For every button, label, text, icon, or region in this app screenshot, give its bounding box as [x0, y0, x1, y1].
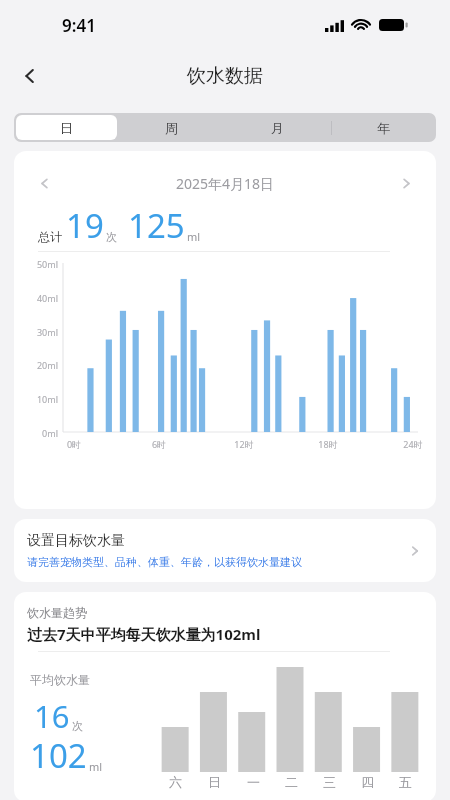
button[interactable]: 月 [224, 113, 330, 142]
staticText: 16 [34, 695, 70, 737]
staticText: 六 [169, 774, 182, 790]
staticText: ml [89, 759, 103, 774]
button[interactable]: Next day [392, 169, 420, 197]
staticText: 40ml [26, 292, 58, 304]
staticText: 19 [66, 203, 104, 248]
staticText: 50ml [26, 258, 58, 270]
staticText: 年 [377, 120, 390, 136]
staticText: 四 [361, 774, 374, 790]
staticText: 0时 [61, 438, 87, 450]
staticText: 一 [247, 774, 260, 790]
staticText: 0ml [26, 427, 58, 439]
button[interactable]: 周 [119, 113, 224, 142]
staticText: 五 [399, 774, 412, 790]
staticText: 9:41 [62, 14, 96, 37]
staticText: 18时 [315, 438, 341, 450]
staticText: 二 [285, 774, 298, 790]
button[interactable]: 设置目标饮水量 [14, 519, 436, 582]
button[interactable]: Previous day [30, 169, 58, 197]
staticText: 日 [208, 774, 221, 790]
staticText: 6时 [146, 438, 172, 450]
staticText: 饮水量趋势 [27, 605, 87, 620]
staticText: 2025年4月18日 [14, 174, 436, 193]
button[interactable]: 日 [14, 113, 119, 142]
staticText: 日 [60, 120, 73, 136]
staticText: 三 [323, 774, 336, 790]
staticText: 请完善宠物类型、品种、体重、年龄，以获得饮水量建议 [27, 555, 302, 569]
staticText: 饮水数据 [0, 64, 450, 88]
staticText: 24时 [400, 438, 426, 450]
staticText: 次 [72, 719, 83, 733]
staticText: 10ml [26, 393, 58, 405]
staticText: ml [187, 229, 201, 244]
staticText: 平均饮水量 [30, 672, 90, 687]
button[interactable]: 年 [330, 113, 436, 142]
staticText: 125 [128, 203, 185, 248]
staticText: 设置目标饮水量 [27, 532, 125, 550]
button[interactable]: Back [12, 58, 48, 94]
staticText: 月 [271, 120, 284, 136]
staticText: 12时 [231, 438, 257, 450]
staticText: 20ml [26, 359, 58, 371]
staticText: 过去7天中平均每天饮水量为102ml [27, 624, 261, 644]
staticText: 30ml [26, 326, 58, 338]
staticText: 总计 [38, 229, 62, 244]
staticText: 次 [106, 230, 117, 244]
staticText: 周 [165, 120, 178, 136]
staticText: 102 [30, 733, 87, 778]
